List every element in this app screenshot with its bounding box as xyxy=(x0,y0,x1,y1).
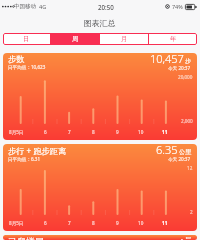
staticText: 74% xyxy=(172,3,183,10)
staticText: 年 xyxy=(170,35,177,43)
staticText: 8 xyxy=(92,129,95,135)
staticText: 月 xyxy=(121,35,128,43)
staticText: 6 xyxy=(44,220,47,226)
staticText: 10 xyxy=(138,220,144,226)
staticText: 10,457 xyxy=(150,53,184,66)
staticText: 4 xyxy=(178,236,184,240)
staticText: 11 xyxy=(162,129,168,135)
staticText: 8月5日 xyxy=(9,220,24,226)
staticText: 今天 20:37 xyxy=(168,156,191,162)
staticText: 6.35 xyxy=(156,144,178,157)
staticText: 中国移动 xyxy=(14,3,36,10)
staticText: 10 xyxy=(138,129,144,135)
staticText: 8月5日 xyxy=(9,129,24,135)
staticText: 今天 20:37 xyxy=(168,65,191,71)
staticText: 4G xyxy=(39,3,47,10)
staticText: 已爬楼层 xyxy=(8,236,44,240)
staticText: 步行 + 跑步距离 xyxy=(8,145,67,156)
staticText: 图表汇总 xyxy=(84,18,116,28)
button[interactable]: 年 xyxy=(149,33,197,45)
staticText: 7 xyxy=(68,220,71,226)
staticText: 7 xyxy=(68,129,71,135)
button[interactable]: 月 xyxy=(100,33,148,45)
button[interactable]: 步数 xyxy=(3,53,197,140)
staticText: 层 xyxy=(185,236,191,239)
staticText: 20:50 xyxy=(98,3,114,11)
staticText: 日平均值：10,623 xyxy=(8,64,46,70)
staticText: 12 xyxy=(187,165,193,171)
staticText: 8 xyxy=(92,220,95,226)
staticText: 步 xyxy=(185,57,191,65)
button[interactable]: 步行 + 跑步距离 xyxy=(3,144,197,231)
staticText: 日平均值：6.31 xyxy=(8,156,41,162)
button[interactable]: 日 xyxy=(3,33,50,45)
staticText: 6 xyxy=(44,129,47,135)
staticText: 日 xyxy=(23,35,30,43)
button[interactable]: 周 xyxy=(51,33,99,45)
button[interactable]: 已爬楼层 xyxy=(3,235,197,240)
staticText: 20,000 xyxy=(178,74,193,80)
staticText: 2,000 xyxy=(181,118,193,124)
staticText: 11 xyxy=(162,220,168,226)
staticText: 周 xyxy=(72,35,79,43)
staticText: 步数 xyxy=(8,54,25,64)
staticText: 9 xyxy=(116,220,119,226)
staticText: 2 xyxy=(190,209,193,215)
staticText: 9 xyxy=(116,129,119,135)
staticText: 公里 xyxy=(179,148,191,156)
